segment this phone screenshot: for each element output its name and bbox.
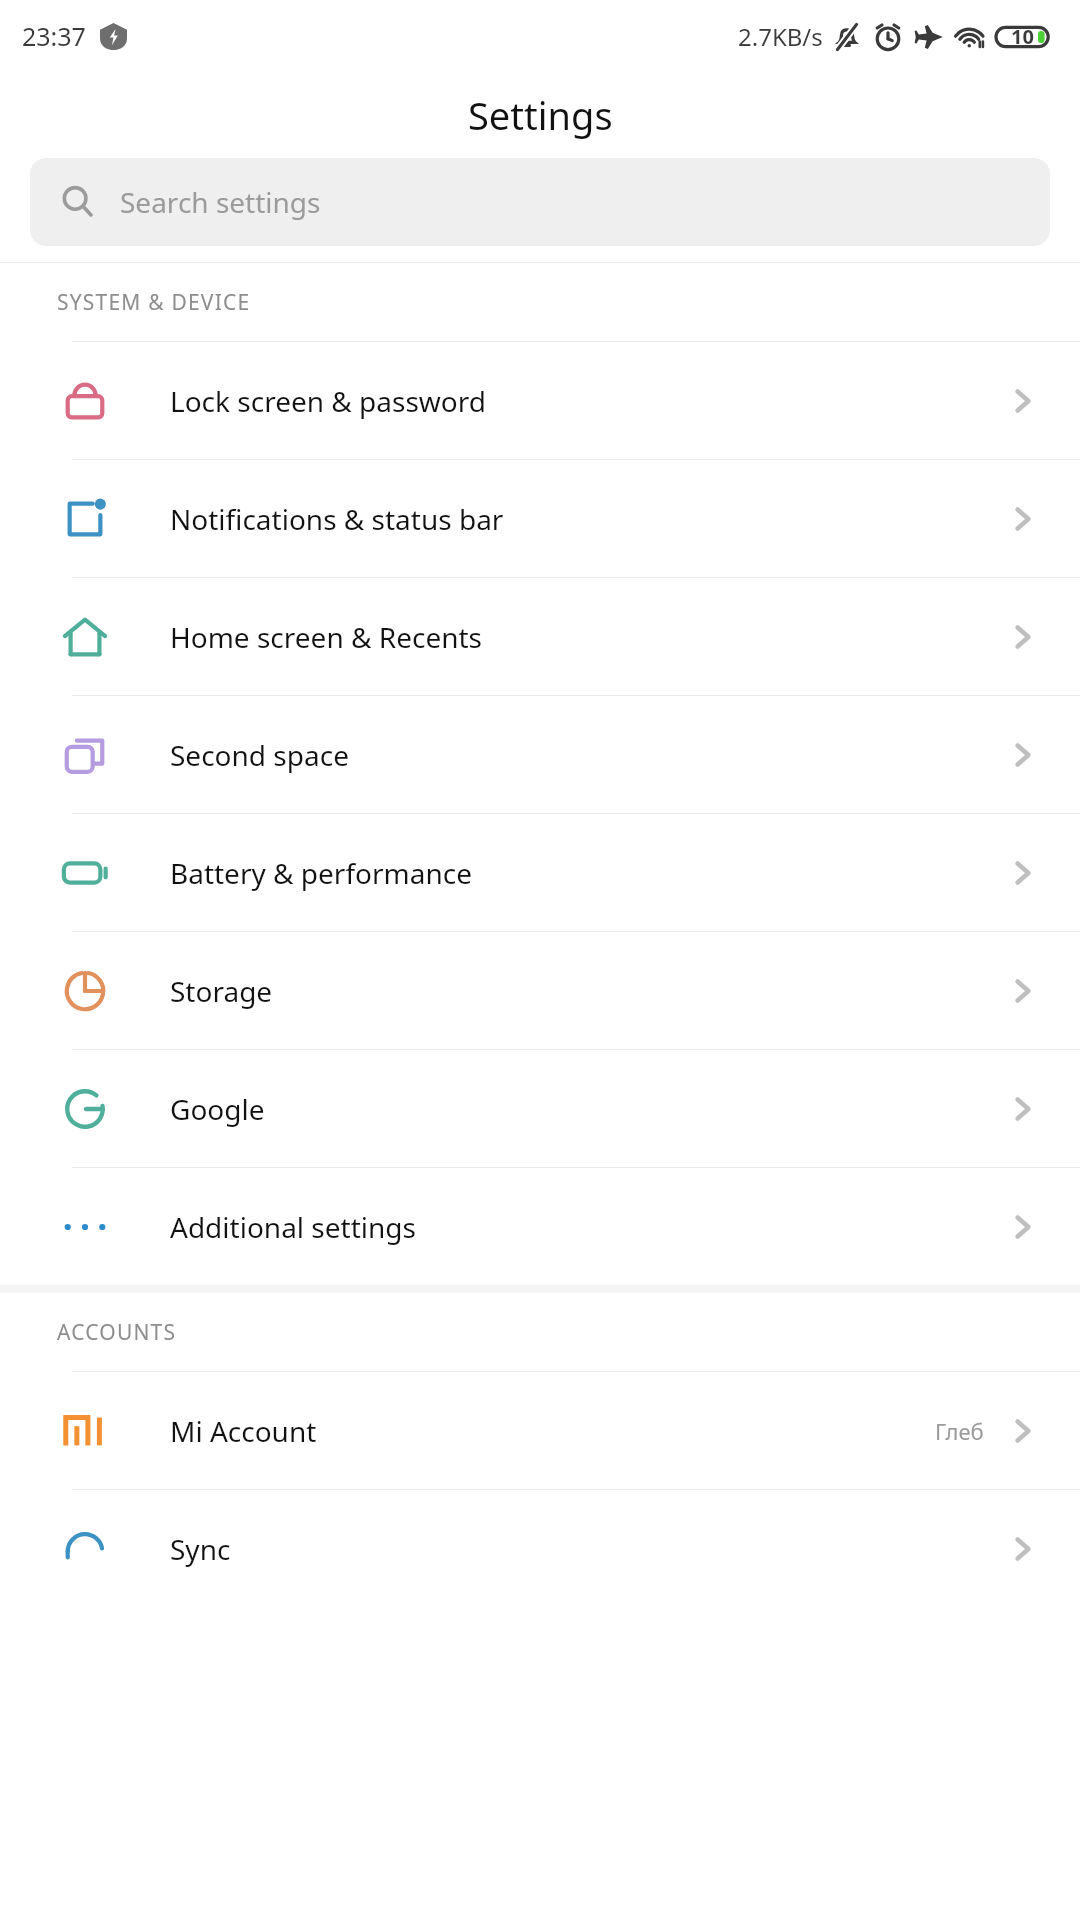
button[interactable]: Mi Account <box>0 1372 1080 1489</box>
staticText: 23:37 <box>22 19 86 53</box>
button[interactable]: Storage <box>0 932 1080 1049</box>
staticText: 10 <box>1011 23 1034 50</box>
button[interactable]: Battery & performance <box>0 814 1080 931</box>
button[interactable]: Home screen & Recents <box>0 578 1080 695</box>
staticText: Глеб <box>935 1416 984 1446</box>
staticText: 2.7KB/s <box>738 20 823 53</box>
staticText: Settings <box>468 89 613 141</box>
button[interactable]: Second space <box>0 696 1080 813</box>
button[interactable]: Sync <box>0 1490 1080 1607</box>
staticText: Notifications & status bar <box>170 500 1006 538</box>
staticText: Second space <box>170 736 1006 774</box>
staticText: Mi Account <box>170 1412 935 1450</box>
button[interactable]: Lock screen & password <box>0 342 1080 459</box>
staticText: Additional settings <box>170 1208 1006 1246</box>
button[interactable]: Additional settings <box>0 1168 1080 1285</box>
button[interactable]: Google <box>0 1050 1080 1167</box>
button[interactable]: Search settings <box>30 158 1050 246</box>
staticText: Sync <box>170 1530 1006 1568</box>
staticText: SYSTEM & DEVICE <box>57 288 251 317</box>
staticText: Storage <box>170 972 1006 1010</box>
staticText: Lock screen & password <box>170 382 1006 420</box>
staticText: Home screen & Recents <box>170 618 1006 656</box>
button[interactable]: Notifications & status bar <box>0 460 1080 577</box>
staticText: ACCOUNTS <box>57 1318 177 1347</box>
staticText: Battery & performance <box>170 854 1006 892</box>
staticText: Google <box>170 1090 1006 1128</box>
staticText: Search settings <box>120 183 321 221</box>
